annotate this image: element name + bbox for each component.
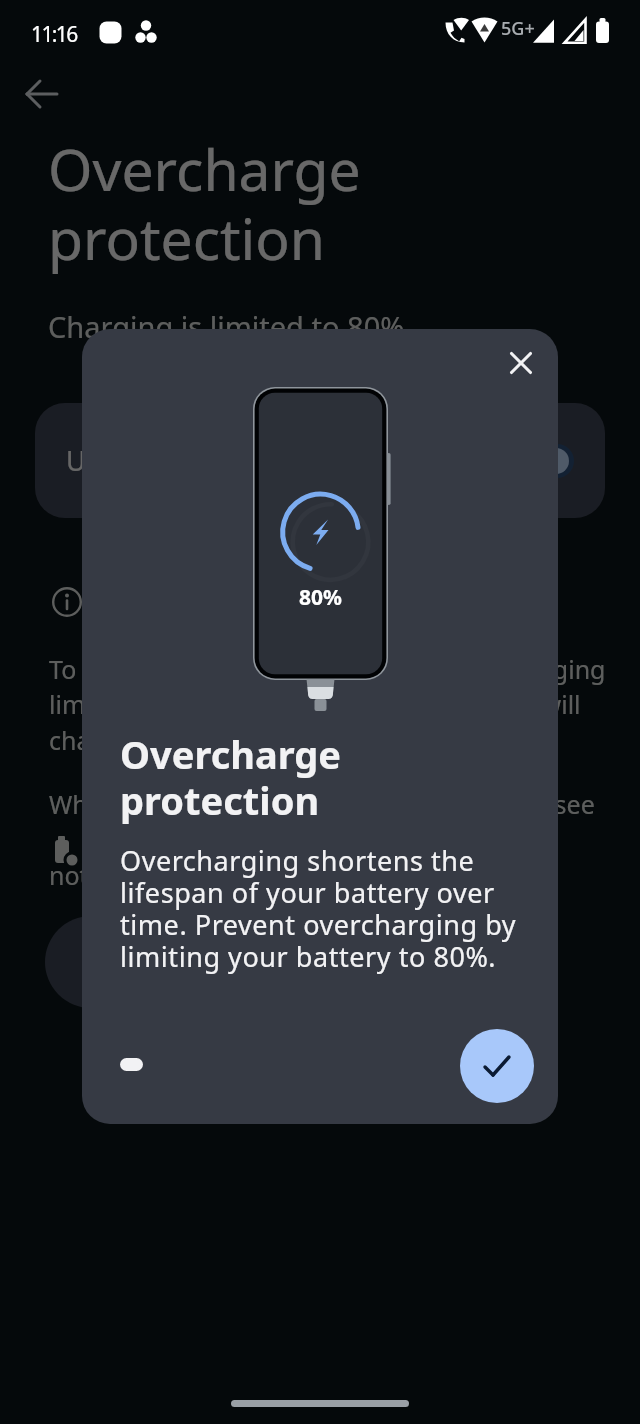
button[interactable]: Back [14,66,70,122]
staticText: 5G+ [501,16,535,41]
staticText: Use overcharge protection [66,442,403,479]
staticText: Overcharging shortens the lifespan of yo… [120,842,517,975]
staticText: Overcharge protection [48,130,361,277]
staticText: Charging is limited to 80% [48,307,405,346]
button[interactable]: Use overcharge protection [35,403,605,518]
button[interactable] [45,916,215,1008]
staticText: Overcharge protection [120,728,342,826]
staticText: 80% [299,583,342,612]
button[interactable]: Confirm [460,1029,534,1103]
staticText: 11:16 [31,20,77,49]
staticText: When overcharge protection is on, you wi… [49,787,640,821]
button[interactable]: Close [495,337,547,389]
staticText: To extend the lifespan of your battery, … [49,652,609,757]
staticText: notification [49,858,183,892]
